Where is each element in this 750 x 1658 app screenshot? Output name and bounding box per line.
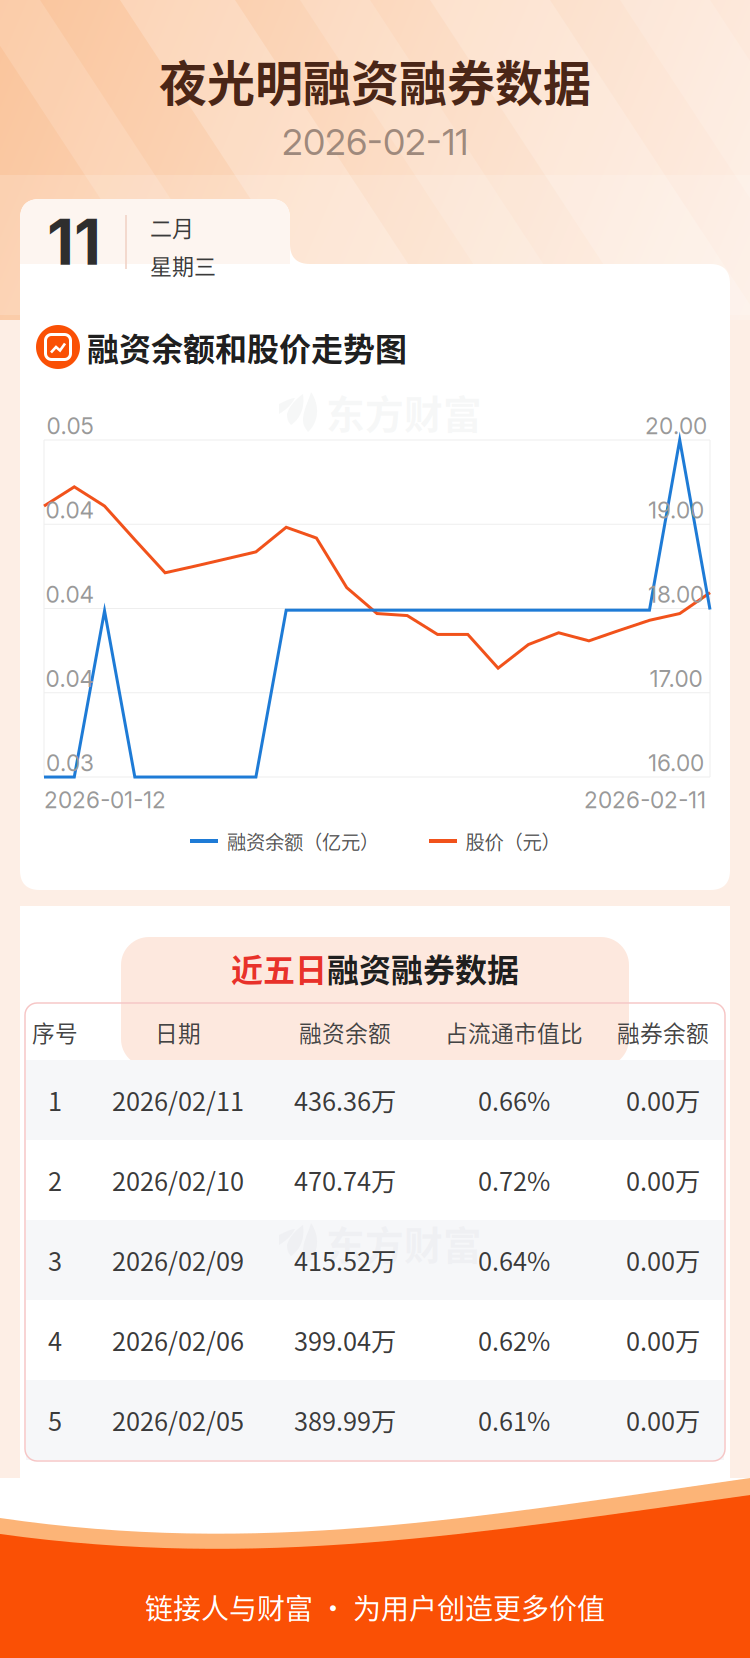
staticText: 融资余额（亿元）: [227, 827, 379, 855]
staticText: 11: [47, 204, 101, 280]
staticText: 0.00万: [626, 1402, 700, 1438]
staticText: 融资余额和股价走势图: [87, 324, 407, 370]
staticText: 17.00: [649, 665, 702, 692]
staticText: 20.00: [645, 412, 707, 440]
staticText: 0.66%: [478, 1082, 550, 1118]
staticText: 1: [48, 1082, 62, 1118]
staticText: 融资融券数据: [327, 945, 519, 991]
staticText: 16.00: [648, 749, 704, 777]
staticText: 东方财富: [326, 384, 482, 440]
staticText: 0.05: [46, 412, 93, 440]
staticText: 0.00万: [626, 1242, 700, 1278]
staticText: 2026-01-12: [44, 786, 166, 814]
staticText: 0.64%: [478, 1242, 550, 1278]
staticText: 2026-02-11: [282, 120, 468, 164]
staticText: 近五日: [231, 945, 327, 991]
staticText: 0.04: [45, 665, 94, 692]
staticText: 415.52万: [294, 1242, 396, 1278]
staticText: 占流通市值比: [445, 1016, 583, 1048]
staticText: 星期三: [150, 249, 216, 281]
staticText: 0.04: [45, 496, 94, 524]
staticText: 436.36万: [294, 1082, 396, 1118]
staticText: 2026/02/10: [112, 1162, 244, 1198]
staticText: 0.62%: [478, 1322, 550, 1358]
staticText: 日期: [155, 1016, 201, 1048]
staticText: 0.03: [46, 749, 94, 777]
staticText: 0.00万: [626, 1082, 700, 1118]
staticText: 3: [48, 1242, 62, 1278]
staticText: 18.00: [648, 581, 704, 608]
staticText: 东方财富: [326, 1215, 482, 1271]
staticText: 序号: [32, 1016, 78, 1048]
staticText: 2026/02/05: [112, 1402, 244, 1438]
staticText: 0.61%: [478, 1402, 550, 1438]
staticText: 2026/02/06: [112, 1322, 244, 1358]
staticText: 0.72%: [478, 1162, 550, 1198]
staticText: 融资余额: [299, 1016, 391, 1048]
staticText: 链接人与财富 · 为用户创造更多价值: [145, 1587, 605, 1627]
staticText: 2026-02-11: [584, 786, 706, 814]
staticText: 股价（元）: [465, 827, 560, 855]
staticText: 2026/02/11: [112, 1082, 244, 1118]
staticText: 389.99万: [294, 1402, 396, 1438]
staticText: 2026/02/09: [112, 1242, 244, 1278]
staticText: 5: [48, 1402, 62, 1438]
staticText: 0.00万: [626, 1162, 700, 1198]
staticText: 夜光明融资融券数据: [159, 45, 591, 115]
staticText: 399.04万: [294, 1322, 396, 1358]
staticText: 19.00: [648, 496, 704, 524]
staticText: 0.04: [45, 581, 94, 608]
staticText: 0.00万: [626, 1322, 700, 1358]
staticText: 二月: [150, 211, 194, 243]
staticText: 470.74万: [294, 1162, 396, 1198]
staticText: 融券余额: [617, 1016, 709, 1048]
staticText: 4: [48, 1322, 62, 1358]
staticText: 2: [48, 1162, 62, 1198]
